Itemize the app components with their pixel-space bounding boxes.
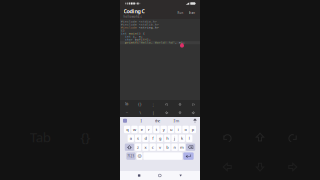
button[interactable]: Share <box>187 11 196 15</box>
staticText: m <box>180 144 184 150</box>
button[interactable]: y <box>160 126 167 133</box>
button[interactable]: o <box>182 126 189 133</box>
button[interactable]: e <box>139 126 145 133</box>
button[interactable]: b <box>164 143 170 151</box>
staticText: u <box>170 127 172 132</box>
button[interactable]: Run <box>176 11 184 15</box>
button[interactable]: g <box>157 135 163 142</box>
staticText: s <box>137 136 139 141</box>
staticText: ; <box>153 102 154 107</box>
button[interactable]: u <box>168 126 174 133</box>
staticText: #include <box>121 26 139 29</box>
button[interactable]: s <box>135 135 141 142</box>
button[interactable]: d <box>142 135 149 142</box>
staticText: z <box>137 144 139 150</box>
button[interactable]: Recents <box>138 174 140 177</box>
button[interactable]: z <box>135 143 141 151</box>
button[interactable]: p <box>190 126 196 133</box>
button[interactable]: r <box>146 126 152 133</box>
button[interactable]: Return <box>183 152 194 160</box>
staticText: {} <box>121 29 125 32</box>
button[interactable]: i <box>175 126 181 133</box>
staticText: int <box>121 32 129 35</box>
staticText: c <box>152 144 154 150</box>
button[interactable]: ?123 <box>126 152 135 160</box>
staticText: Run <box>177 11 183 15</box>
staticText: () { <box>137 32 145 35</box>
staticText: helloworld.c <box>123 15 141 18</box>
staticText: v <box>159 144 161 150</box>
staticText: l <box>189 136 190 141</box>
staticText: t <box>156 127 157 132</box>
button[interactable]: Key <box>120 108 133 117</box>
staticText: I'm <box>173 118 179 123</box>
staticText: g <box>159 136 161 141</box>
staticText: ]; <box>147 38 151 41</box>
staticText: #include <stdlib.h> <box>121 23 159 26</box>
button[interactable]: m <box>179 143 185 151</box>
staticText: char <box>121 38 135 41</box>
button[interactable]: Backspace <box>186 143 195 151</box>
staticText: j <box>174 136 175 141</box>
button[interactable]: c <box>149 143 156 151</box>
staticText: <string.h> <box>139 26 159 29</box>
staticText: y <box>163 127 165 132</box>
staticText: Coding C <box>123 8 144 15</box>
staticText: "Hello, World! %d" <box>139 41 175 44</box>
button[interactable]: Keyboard settings <box>123 119 127 123</box>
staticText: the <box>155 118 160 123</box>
staticText: ?123 <box>127 154 134 158</box>
staticText: 64 <box>143 38 147 41</box>
staticText: ☺ <box>137 154 141 158</box>
button[interactable]: Key <box>173 100 187 108</box>
button[interactable]: a <box>128 135 134 142</box>
button[interactable]: k <box>179 135 185 142</box>
button[interactable]: j <box>171 135 178 142</box>
staticText: f <box>152 136 153 141</box>
button[interactable]: f <box>149 135 156 142</box>
staticText: o <box>184 127 186 132</box>
button[interactable]: Key <box>160 108 173 117</box>
staticText: , n); <box>175 41 185 44</box>
staticText: printf( <box>121 41 139 44</box>
staticText: n <box>174 144 176 150</box>
staticText: q <box>126 127 128 132</box>
button[interactable]: Key <box>120 100 133 108</box>
staticText: Share <box>188 11 195 15</box>
button[interactable]: Voice input <box>193 118 197 123</box>
staticText: w <box>133 127 136 132</box>
staticText: #include <stdio.h> <box>121 20 157 23</box>
button[interactable]: Key <box>187 100 200 108</box>
button[interactable]: v <box>157 143 163 151</box>
staticText: ~ <box>126 110 128 115</box>
button[interactable]: Key <box>173 108 187 117</box>
button[interactable]: t <box>153 126 160 133</box>
button[interactable]: Key <box>187 108 200 117</box>
button[interactable]: Shift <box>125 143 134 151</box>
button[interactable]: Key <box>147 108 160 117</box>
button[interactable]: ☺ <box>136 152 142 160</box>
staticText: I <box>140 118 141 123</box>
button[interactable]: h <box>164 135 170 142</box>
staticText: p <box>192 127 194 132</box>
staticText: r <box>148 127 150 132</box>
staticText: a <box>130 136 132 141</box>
button[interactable]: x <box>142 143 149 151</box>
button[interactable]: q <box>124 126 130 133</box>
button[interactable]: Home <box>158 174 161 177</box>
staticText: h <box>166 136 168 141</box>
button[interactable]: Key <box>133 100 147 108</box>
button[interactable]: l <box>186 135 192 142</box>
staticText: k <box>181 136 183 141</box>
button[interactable]: Key <box>160 100 173 108</box>
button[interactable] <box>143 152 182 160</box>
button[interactable]: Key <box>133 108 147 117</box>
staticText: | <box>152 110 154 115</box>
button[interactable]: w <box>131 126 138 133</box>
staticText: {} <box>80 128 90 146</box>
staticText: {} <box>138 102 142 107</box>
staticText: Tab <box>125 102 129 106</box>
button[interactable]: Back <box>179 174 182 177</box>
button[interactable]: n <box>171 143 178 151</box>
